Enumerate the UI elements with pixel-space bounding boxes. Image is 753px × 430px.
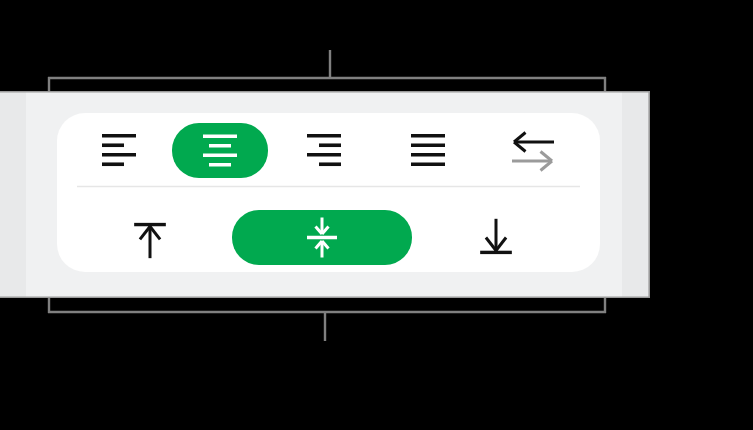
button[interactable]: Align center: [172, 123, 268, 178]
button[interactable]: Align right: [301, 127, 347, 173]
button[interactable]: Align bottom: [472, 214, 520, 262]
button[interactable]: Align top: [126, 214, 174, 262]
button[interactable]: Justify: [405, 127, 451, 173]
button[interactable]: Align left: [96, 127, 142, 173]
button[interactable]: Text direction: [508, 126, 558, 176]
button[interactable]: Align middle: [232, 210, 412, 265]
